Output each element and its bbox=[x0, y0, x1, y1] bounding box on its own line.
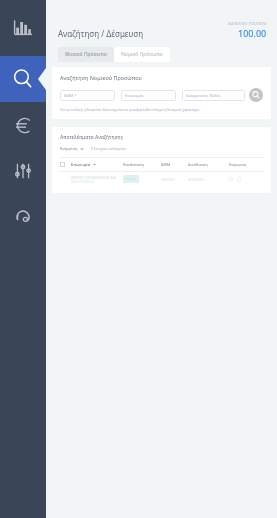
button[interactable]: Φυσικό Πρόσωπο bbox=[58, 47, 114, 62]
button[interactable]: Ενέργειες bbox=[60, 146, 87, 151]
button[interactable]: Ενέργειες bbox=[229, 162, 263, 167]
button[interactable]: Κατάσταση bbox=[123, 162, 161, 167]
staticText: Διακριτικός Τίτλος bbox=[186, 93, 221, 98]
staticText: Ενέργειες bbox=[229, 162, 247, 167]
staticText: Φυσικό Πρόσωπο bbox=[65, 51, 107, 58]
button[interactable]: Search bbox=[0, 56, 46, 102]
button[interactable]: Επιλογή όλων bbox=[60, 162, 65, 167]
staticText: Επωνυμία bbox=[125, 93, 144, 98]
staticText: Κατάσταση bbox=[123, 162, 144, 167]
button[interactable]: Νομικό Πρόσωπο bbox=[114, 47, 170, 62]
button[interactable]: Dashboard bbox=[0, 0, 46, 56]
button[interactable]: Payments bbox=[0, 102, 46, 148]
button[interactable]: Settings bbox=[0, 148, 46, 194]
staticText: ΔΙΑΘΕΣΙΜΟ ΥΠΟΛΟΙΠΟ bbox=[228, 22, 267, 26]
staticText: Νομικό Πρόσωπο bbox=[121, 51, 163, 58]
staticText: Ενέργειες bbox=[60, 146, 78, 151]
staticText: Διεύθυνση bbox=[188, 162, 208, 167]
button[interactable]: Επωνυμία bbox=[71, 162, 123, 167]
staticText: ΑΦΜ * bbox=[64, 93, 77, 98]
button[interactable]: Διεύθυνση bbox=[188, 162, 229, 167]
staticText: 100.00 bbox=[238, 27, 267, 39]
button[interactable]: ΚΕΝΤΡΟ ΕΠΙΧΕΙΡΗΣΗΣ ΚΑΙ bbox=[60, 172, 263, 186]
staticText: 0 Στοιχεία επιλεγμένα bbox=[91, 146, 126, 151]
staticText: Αναζήτηση Νομικού Προσώπου bbox=[60, 74, 142, 81]
button[interactable]: Αναζήτηση bbox=[249, 88, 263, 102]
staticText: Ενεργή bbox=[126, 177, 136, 181]
button[interactable]: ΑΦΜ * bbox=[60, 90, 115, 101]
staticText: ΑΝΑΠΤΥΞΗΣ ΑΕ bbox=[71, 180, 95, 184]
staticText: Επωνυμία bbox=[71, 162, 91, 167]
staticText: Αποτελέσματα Αναζήτησης bbox=[60, 134, 124, 141]
button[interactable]: ΑΦΜ bbox=[161, 162, 188, 167]
staticText: Αναζήτηση / Δέσμευση bbox=[58, 28, 144, 39]
button[interactable]: Επωνυμία bbox=[121, 90, 176, 101]
button[interactable]: Διακριτικός Τίτλος bbox=[182, 90, 245, 101]
staticText: 9999999 bbox=[161, 177, 175, 182]
staticText: ΚΕΝΤΡΟ ΕΠΙΧΕΙΡΗΣΗΣ ΚΑΙ bbox=[71, 175, 116, 180]
button[interactable]: Support bbox=[0, 194, 46, 240]
staticText: ΑΘΗΝΩΝ 1 bbox=[188, 177, 206, 182]
staticText: ΑΦΜ bbox=[161, 162, 171, 167]
staticText: Για την επιλογή ή δεσμεύσει λίστα σημείω… bbox=[60, 108, 200, 112]
